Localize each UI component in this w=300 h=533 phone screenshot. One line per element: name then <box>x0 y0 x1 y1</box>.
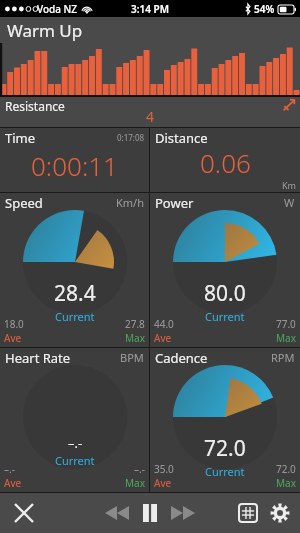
button[interactable]: Power <box>150 193 300 347</box>
staticText: Current <box>205 309 245 324</box>
staticText: Max <box>125 476 145 490</box>
other: Resistance trend <box>282 99 295 112</box>
staticText: BPM <box>120 350 144 365</box>
button[interactable]: Grid layout <box>236 501 260 525</box>
staticText: RPM <box>271 350 295 365</box>
button[interactable]: Fast forward <box>168 500 198 526</box>
staticText: Max <box>276 476 296 490</box>
button[interactable]: Cadence <box>150 348 300 492</box>
staticText: 0:00:11 <box>31 148 118 183</box>
button[interactable]: Resistance <box>0 97 300 127</box>
staticText: 44.0 <box>154 317 174 331</box>
staticText: Km/h <box>116 195 144 210</box>
staticText: Ave <box>154 331 172 345</box>
staticText: –.- <box>134 462 145 476</box>
button[interactable]: Rewind <box>102 500 132 526</box>
staticText: Current <box>55 309 95 324</box>
staticText: –.- <box>4 462 15 476</box>
staticText: Distance <box>155 129 208 147</box>
button[interactable]: Warm Up <box>0 17 300 43</box>
staticText: 80.0 <box>204 279 246 308</box>
button[interactable] <box>0 43 300 97</box>
button[interactable]: Speed <box>0 193 149 347</box>
staticText: Resistance <box>5 98 65 114</box>
staticText: 77.0 <box>276 317 296 331</box>
staticText: Cadence <box>155 349 208 367</box>
staticText: Heart Rate <box>5 349 71 367</box>
staticText: Ave <box>4 331 22 345</box>
staticText: 0.06 <box>200 145 251 180</box>
staticText: Voda NZ <box>37 2 78 16</box>
button[interactable]: Close <box>10 499 38 527</box>
staticText: –.- <box>68 434 83 452</box>
staticText: Current <box>205 464 245 479</box>
staticText: 3:14 PM <box>131 2 169 16</box>
staticText: Ave <box>4 476 22 490</box>
staticText: 72.0 <box>276 462 296 476</box>
staticText: 18.0 <box>4 317 24 331</box>
staticText: Power <box>155 194 194 212</box>
staticText: Current <box>55 453 95 468</box>
staticText: Max <box>276 331 296 345</box>
staticText: 28.4 <box>54 279 96 308</box>
staticText: 54% <box>254 2 275 16</box>
button[interactable]: Time <box>0 128 149 192</box>
staticText: Speed <box>5 194 43 212</box>
staticText: 27.8 <box>125 317 145 331</box>
staticText: 35.0 <box>154 462 174 476</box>
button[interactable]: Pause <box>138 500 162 526</box>
button[interactable]: Heart Rate <box>0 348 149 492</box>
staticText: Max <box>125 331 145 345</box>
staticText: 72.0 <box>204 434 246 463</box>
staticText: W <box>284 195 295 210</box>
staticText: Km <box>282 179 296 191</box>
button[interactable]: Distance <box>150 128 300 192</box>
button[interactable]: Settings <box>268 501 292 525</box>
staticText: Ave <box>154 476 172 490</box>
staticText: 4 <box>146 107 155 126</box>
staticText: 0:17:08 <box>117 132 145 143</box>
staticText: Warm Up <box>7 19 83 42</box>
staticText: Time <box>5 129 36 147</box>
